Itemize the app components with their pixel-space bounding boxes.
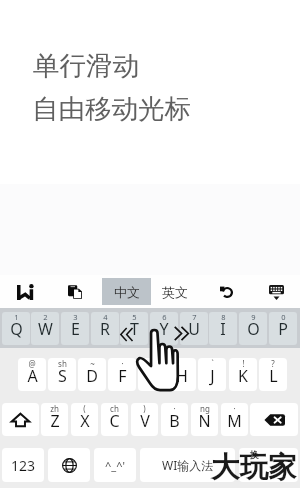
button[interactable]: Hide keyboard: [261, 278, 291, 306]
staticText: B: [169, 410, 180, 432]
staticText: 9: [251, 312, 256, 322]
staticText: @: [28, 358, 36, 369]
staticText: U: [188, 318, 200, 340]
staticText: A: [27, 365, 38, 387]
button[interactable]: zh: [41, 403, 68, 436]
staticText: sh: [58, 358, 67, 369]
staticText: !: [242, 358, 245, 369]
staticText: O: [247, 318, 260, 340]
staticText: Z: [50, 410, 60, 432]
staticText: WI输入法: [162, 457, 214, 473]
button[interactable]: ): [131, 403, 158, 436]
staticText: S: [58, 365, 67, 387]
staticText: H: [176, 365, 188, 387]
staticText: ?: [271, 358, 275, 369]
button[interactable]: Clipboard: [60, 278, 90, 306]
staticText: V: [140, 410, 150, 432]
staticText: ^_^': [105, 458, 125, 473]
button[interactable]: 0: [269, 312, 297, 345]
staticText: ): [143, 403, 146, 414]
button[interactable]: 123: [2, 448, 44, 482]
staticText: I: [220, 318, 226, 340]
button[interactable]: ~: [78, 358, 106, 391]
button[interactable]: ·: [221, 403, 248, 436]
staticText: W: [38, 318, 53, 340]
button[interactable]: sh: [48, 358, 76, 391]
staticText: 单行滑动: [33, 49, 139, 82]
staticText: D: [86, 365, 98, 387]
staticText: F: [118, 365, 127, 387]
button[interactable]: ^_^': [94, 448, 136, 482]
staticText: Y: [159, 318, 169, 340]
button[interactable]: 1: [2, 312, 30, 345]
button[interactable]: 8: [209, 312, 237, 345]
button[interactable]: Switch language: [48, 448, 90, 482]
staticText: 5: [132, 312, 137, 322]
staticText: G: [146, 365, 158, 387]
staticText: 3: [73, 312, 78, 322]
button[interactable]: ?: [259, 358, 287, 391]
button[interactable]: G: [138, 358, 166, 391]
staticText: 换: [250, 449, 259, 460]
staticText: 英文: [162, 284, 188, 300]
staticText: C: [109, 410, 120, 432]
staticText: ·: [121, 358, 124, 369]
staticText: 大玩家: [211, 450, 297, 486]
button[interactable]: Shift: [2, 403, 39, 436]
button[interactable]: Undo: [211, 278, 241, 306]
staticText: 0: [281, 312, 286, 322]
button[interactable]: ng: [191, 403, 218, 436]
staticText: ·: [233, 403, 236, 414]
button[interactable]: Backspace: [250, 403, 298, 436]
staticText: 4: [103, 312, 108, 322]
button[interactable]: H: [168, 358, 196, 391]
staticText: 自由移动光标: [32, 92, 191, 125]
staticText: N: [198, 410, 211, 432]
staticText: `: [211, 358, 214, 369]
staticText: J: [210, 365, 215, 387]
staticText: 123: [11, 456, 36, 475]
staticText: ch: [110, 403, 119, 414]
staticText: R: [100, 318, 110, 340]
staticText: 6: [162, 312, 167, 322]
staticText: L: [269, 365, 278, 387]
button[interactable]: (: [71, 403, 98, 436]
button[interactable]: `: [198, 358, 226, 391]
staticText: 8: [221, 312, 226, 322]
staticText: zh: [50, 403, 59, 414]
staticText: M: [227, 410, 242, 432]
staticText: 1: [14, 312, 19, 322]
button[interactable]: 中文: [102, 278, 151, 305]
staticText: (: [83, 403, 86, 414]
staticText: T: [130, 318, 139, 340]
button[interactable]: 英文: [151, 278, 199, 305]
button[interactable]: ·: [108, 358, 136, 391]
button[interactable]: ch: [101, 403, 128, 436]
staticText: ·: [173, 403, 176, 414]
button[interactable]: 3: [61, 312, 89, 345]
staticText: ~: [90, 358, 95, 369]
button[interactable]: !: [229, 358, 257, 391]
button[interactable]: 7: [180, 312, 208, 345]
button[interactable]: ·: [161, 403, 188, 436]
button[interactable]: 4: [91, 312, 119, 345]
staticText: ng: [200, 403, 210, 414]
button[interactable]: @: [18, 358, 46, 391]
staticText: 7: [192, 312, 197, 322]
button[interactable]: 2: [31, 312, 59, 345]
staticText: E: [71, 318, 80, 340]
button[interactable]: 6: [150, 312, 178, 345]
button[interactable]: WI输入法: [140, 448, 235, 482]
staticText: Q: [10, 318, 23, 340]
staticText: P: [278, 318, 288, 340]
staticText: X: [80, 410, 90, 432]
staticText: 中文: [114, 284, 140, 300]
button[interactable]: Handwriting input: [10, 278, 40, 306]
button[interactable]: 5: [120, 312, 148, 345]
button[interactable]: 9: [239, 312, 267, 345]
staticText: 2: [43, 312, 48, 322]
staticText: K: [238, 365, 248, 387]
button[interactable]: Enter: [239, 448, 298, 482]
